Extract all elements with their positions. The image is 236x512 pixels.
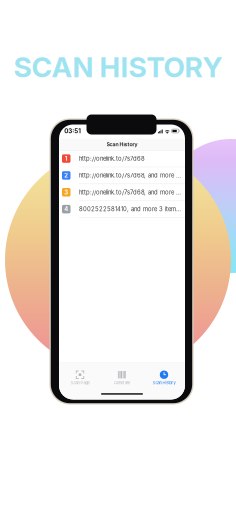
staticText: 03:51 <box>64 127 81 135</box>
staticText: 4 <box>64 206 68 213</box>
staticText: Generate <box>114 380 130 385</box>
button[interactable]: Scan Page <box>59 371 101 385</box>
button[interactable]: Scan History <box>143 371 185 385</box>
button[interactable]: 3 <box>59 184 185 201</box>
button[interactable]: 4 <box>59 201 185 218</box>
staticText: Scan Page <box>70 380 89 385</box>
staticText: SCAN HISTORY <box>13 50 222 84</box>
staticText: 1 <box>65 155 68 162</box>
button[interactable]: 1 <box>59 150 185 167</box>
staticText: http://onelink.to/7s7d68, and more 1 ... <box>79 189 182 196</box>
staticText: http://onelink.to/7s7d68, and more 1 ... <box>79 172 182 179</box>
button[interactable]: 2 <box>59 167 185 184</box>
staticText: http://onelink.to/7s7d68 <box>79 155 145 162</box>
button[interactable]: Generate <box>101 371 143 385</box>
staticText: Scan History <box>106 141 137 147</box>
staticText: 3 <box>64 189 68 196</box>
staticText: 2 <box>64 172 68 179</box>
staticText: 8002522581410, and more 3 items.. <box>79 206 182 213</box>
staticText: Scan History <box>152 380 175 385</box>
